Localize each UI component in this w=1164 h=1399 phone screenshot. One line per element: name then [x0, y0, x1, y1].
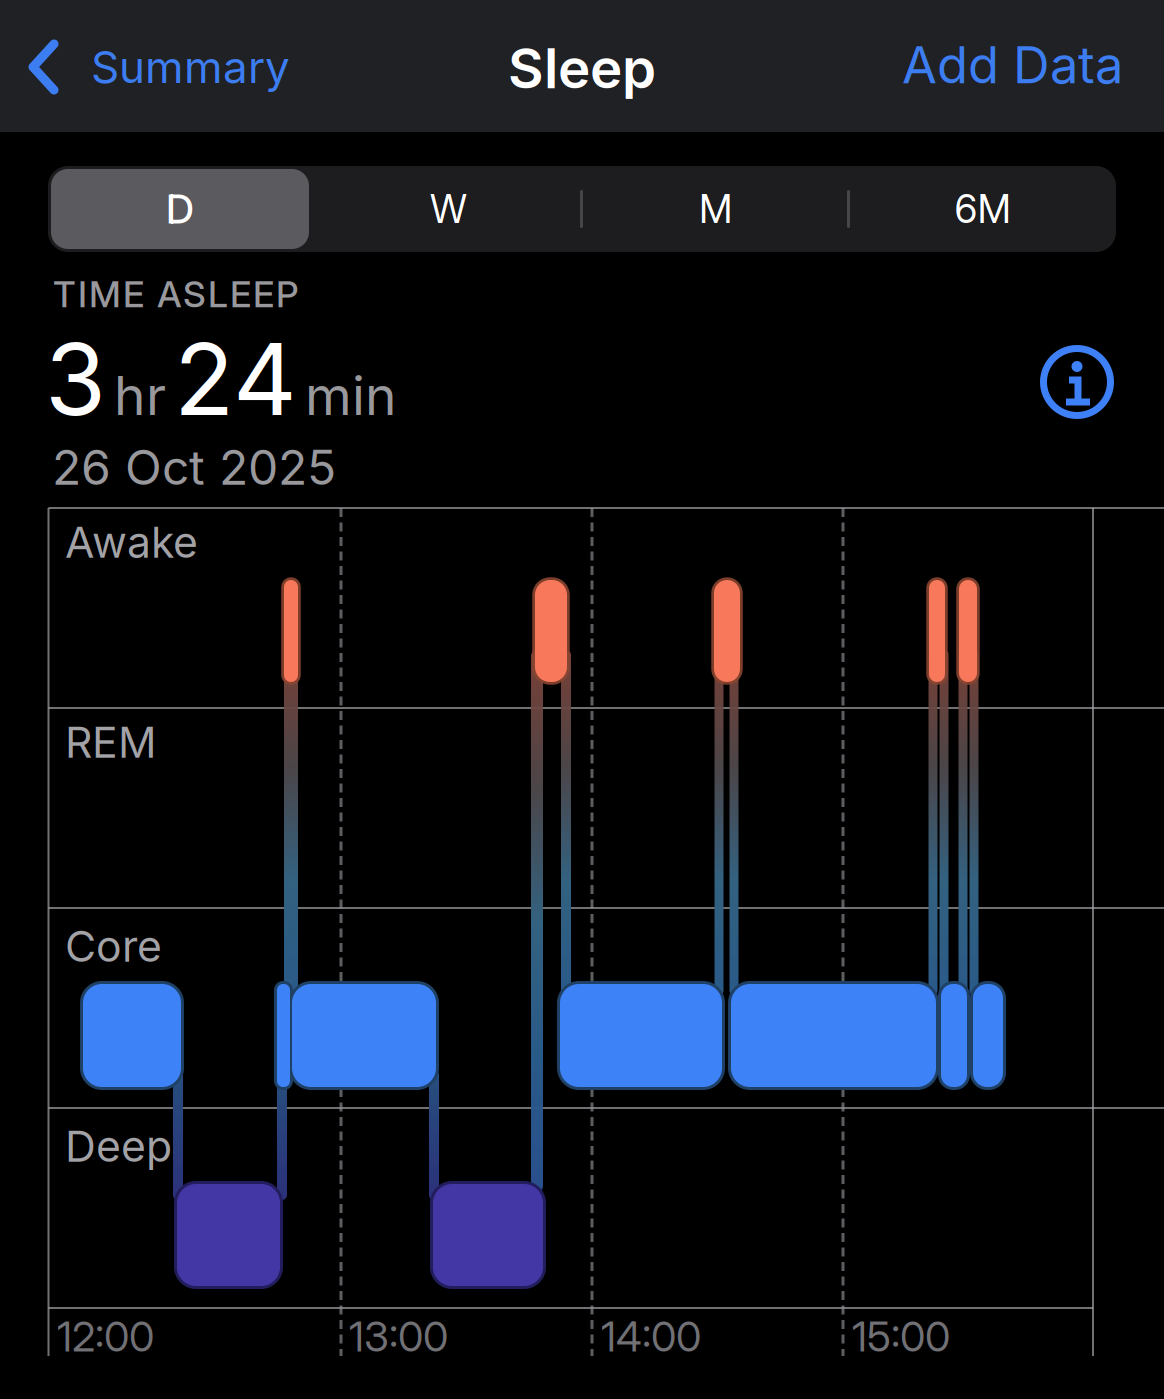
button[interactable]: About Time Asleep: [1040, 345, 1114, 419]
staticText: Awake: [65, 517, 198, 567]
staticText: Deep: [65, 1121, 172, 1171]
button[interactable]: W: [315, 166, 582, 252]
button[interactable]: Summary: [28, 39, 290, 95]
staticText: D: [166, 185, 194, 233]
staticText: 3: [45, 321, 106, 437]
staticText: TIME ASLEEP: [53, 273, 299, 315]
staticText: W: [430, 186, 467, 232]
button[interactable]: Add Data: [902, 35, 1123, 95]
staticText: hr: [114, 364, 166, 427]
button[interactable]: M: [582, 166, 849, 252]
staticText: Add Data: [902, 35, 1123, 95]
staticText: Sleep: [508, 36, 656, 100]
staticText: 12:00: [57, 1312, 154, 1361]
staticText: 13:00: [349, 1312, 448, 1361]
staticText: Summary: [91, 41, 290, 93]
staticText: 26 Oct 2025: [52, 439, 336, 496]
button[interactable]: D: [51, 169, 309, 249]
staticText: M: [699, 186, 732, 232]
staticText: REM: [65, 717, 157, 767]
staticText: 14:00: [601, 1312, 701, 1361]
staticText: 15:00: [852, 1312, 950, 1361]
staticText: min: [305, 364, 397, 427]
staticText: Core: [65, 921, 162, 971]
button[interactable]: 6M: [849, 166, 1116, 252]
staticText: 6M: [954, 186, 1010, 232]
staticText: 24: [174, 321, 297, 437]
